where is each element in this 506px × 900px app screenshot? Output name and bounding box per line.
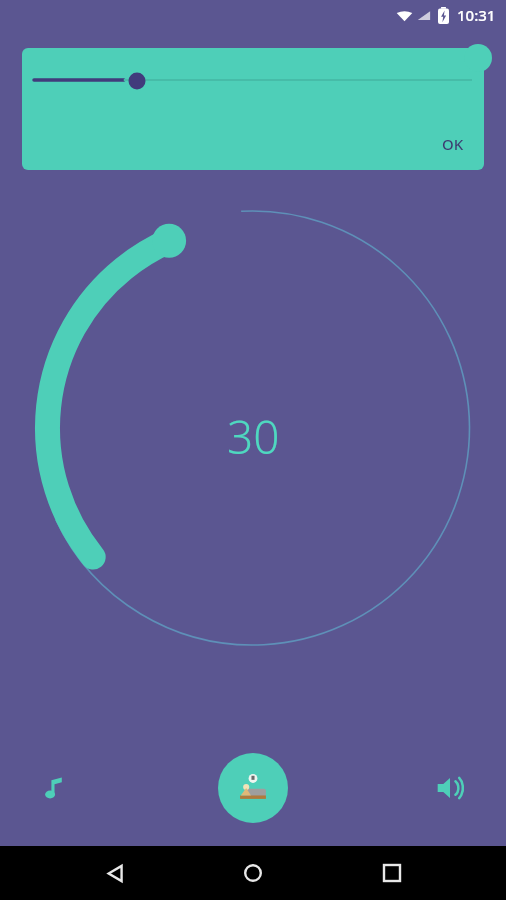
button[interactable]: Recents bbox=[368, 849, 416, 897]
button[interactable]: Music bbox=[28, 762, 80, 814]
staticText: 30 bbox=[227, 405, 280, 468]
button[interactable]: OK bbox=[422, 118, 484, 170]
staticText: 10:31 bbox=[457, 5, 496, 25]
button[interactable]: Back bbox=[91, 849, 139, 897]
button[interactable]: Expand bbox=[464, 44, 492, 72]
button[interactable]: OK bbox=[22, 48, 484, 170]
button[interactable]: Volume bbox=[424, 762, 476, 814]
button[interactable]: Sleep bbox=[218, 753, 288, 823]
staticText: OK bbox=[442, 134, 464, 154]
button[interactable]: Home bbox=[229, 849, 277, 897]
